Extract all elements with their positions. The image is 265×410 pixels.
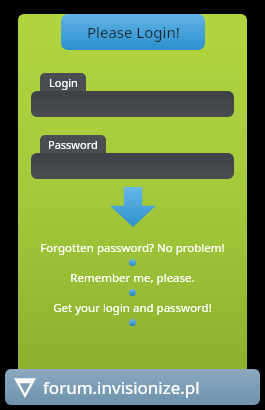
staticText: Password — [48, 137, 98, 152]
staticText: Get your login and password! — [53, 300, 212, 316]
staticText: Login — [49, 75, 78, 90]
staticText: Forgotten password? No problem! — [40, 240, 225, 256]
staticText: Remember me, please. — [70, 270, 195, 286]
button[interactable]: Get your login and password! — [24, 299, 241, 316]
button[interactable]: Remember me, please. — [24, 269, 241, 286]
button[interactable] — [31, 91, 234, 117]
button[interactable]: forum.invisionize.pl — [5, 369, 260, 405]
button[interactable]: Forgotten password? No problem! — [24, 239, 241, 256]
button[interactable]: Submit — [110, 187, 156, 227]
staticText: Please Login! — [87, 22, 180, 42]
button[interactable] — [31, 153, 234, 179]
staticText: forum.invisionize.pl — [43, 376, 200, 399]
button[interactable]: Please Login! — [61, 14, 205, 50]
